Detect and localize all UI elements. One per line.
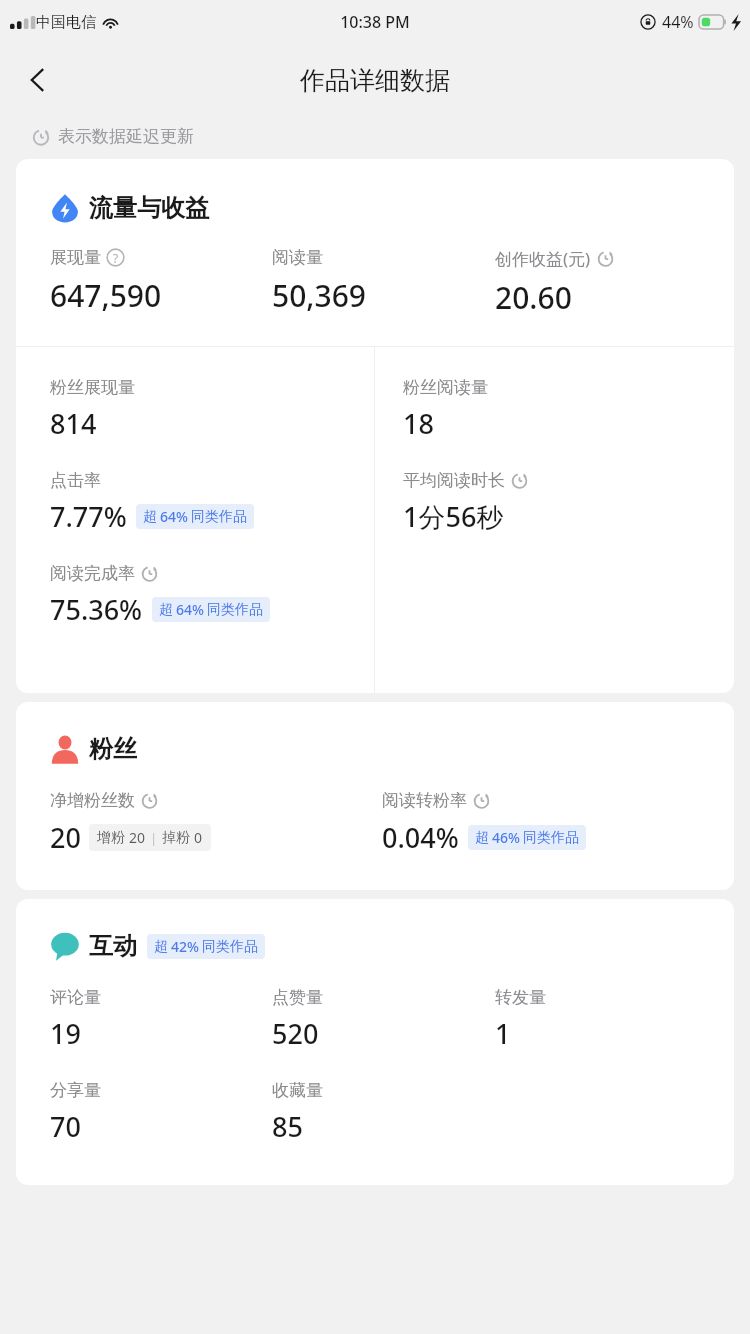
staticText: 粉丝展现量 — [50, 377, 135, 398]
staticText: 创作收益(元) — [495, 247, 591, 270]
button[interactable]: 阅读完成率 — [50, 563, 270, 628]
staticText: 10:38 PM — [340, 11, 410, 33]
button[interactable]: 超 — [147, 934, 265, 959]
staticText: 85 — [272, 1108, 303, 1145]
button[interactable]: 点击率 — [50, 470, 254, 535]
button[interactable]: 评论量 — [50, 987, 272, 1052]
staticText: 流量与收益 — [89, 193, 209, 223]
staticText: 46% — [492, 828, 520, 847]
button[interactable]: 分享量 — [50, 1080, 272, 1145]
staticText: 阅读转粉率 — [382, 790, 467, 811]
staticText: 超 — [143, 508, 157, 526]
staticText: 814 — [50, 405, 97, 442]
staticText: 520 — [272, 1015, 319, 1052]
button[interactable]: 转发量 — [495, 987, 718, 1052]
button[interactable]: 超 — [468, 825, 586, 850]
staticText: 平均阅读时长 — [403, 470, 505, 491]
button[interactable]: 粉丝展现量 — [50, 377, 135, 442]
button[interactable]: 展现量 — [50, 247, 272, 316]
staticText: 42% — [171, 937, 199, 956]
staticText: 19 — [50, 1015, 81, 1052]
staticText: 同类作品 — [523, 829, 579, 847]
staticText: 净增粉丝数 — [50, 790, 135, 811]
button[interactable]: 阅读量 — [272, 247, 495, 316]
staticText: 0 — [194, 828, 203, 847]
staticText: 增粉 — [97, 829, 125, 847]
staticText: 1分56秒 — [403, 498, 504, 535]
staticText: 20 — [50, 819, 81, 856]
staticText: 7.77% — [50, 498, 127, 535]
staticText: 点击率 — [50, 470, 101, 491]
button[interactable]: 收藏量 — [272, 1080, 495, 1145]
staticText: 647,590 — [50, 275, 162, 316]
staticText: 50,369 — [272, 275, 366, 316]
staticText: 20 — [129, 828, 146, 847]
staticText: 75.36% — [50, 591, 143, 628]
button[interactable]: 超 — [152, 597, 270, 622]
staticText: 评论量 — [50, 987, 101, 1008]
staticText: 20.60 — [495, 277, 572, 318]
staticText: 互动 — [89, 931, 137, 961]
staticText: 掉粉 — [162, 829, 190, 847]
staticText: 0.04% — [382, 819, 459, 856]
staticText: 阅读完成率 — [50, 563, 135, 584]
button[interactable]: 净增粉丝数 — [50, 790, 382, 856]
staticText: 中国电信 — [36, 13, 96, 32]
staticText: 44% — [662, 11, 694, 33]
staticText: 同类作品 — [191, 508, 247, 526]
staticText: 70 — [50, 1108, 81, 1145]
staticText: 超 — [475, 829, 489, 847]
staticText: 转发量 — [495, 987, 546, 1008]
button[interactable]: 超 — [136, 504, 254, 529]
staticText: 同类作品 — [202, 938, 258, 956]
staticText: 超 — [154, 938, 168, 956]
staticText: 收藏量 — [272, 1080, 323, 1101]
button[interactable]: 粉丝阅读量 — [403, 377, 488, 442]
staticText: 1 — [495, 1015, 511, 1052]
staticText: 点赞量 — [272, 987, 323, 1008]
staticText: 粉丝 — [89, 734, 137, 764]
staticText: 超 — [159, 601, 173, 619]
button[interactable]: 点赞量 — [272, 987, 495, 1052]
staticText: 作品详细数据 — [300, 65, 450, 96]
button[interactable]: 平均阅读时长 — [403, 470, 529, 535]
staticText: 阅读量 — [272, 247, 323, 268]
staticText: 表示数据延迟更新 — [58, 126, 194, 147]
button[interactable]: 流量与收益 — [16, 159, 229, 223]
staticText: 18 — [403, 405, 434, 442]
staticText: ? — [113, 250, 119, 266]
button[interactable]: 创作收益(元) — [495, 247, 718, 318]
staticText: 64% — [176, 600, 204, 619]
button[interactable]: 阅读转粉率 — [382, 790, 714, 856]
button[interactable]: 互动 — [50, 931, 265, 961]
staticText: 同类作品 — [207, 601, 263, 619]
staticText: | — [150, 829, 158, 847]
staticText: 64% — [160, 507, 188, 526]
staticText: 分享量 — [50, 1080, 101, 1101]
button[interactable]: Back — [14, 56, 62, 104]
staticText: 粉丝阅读量 — [403, 377, 488, 398]
staticText: 展现量 — [50, 247, 101, 268]
button[interactable]: 粉丝 — [50, 734, 137, 764]
